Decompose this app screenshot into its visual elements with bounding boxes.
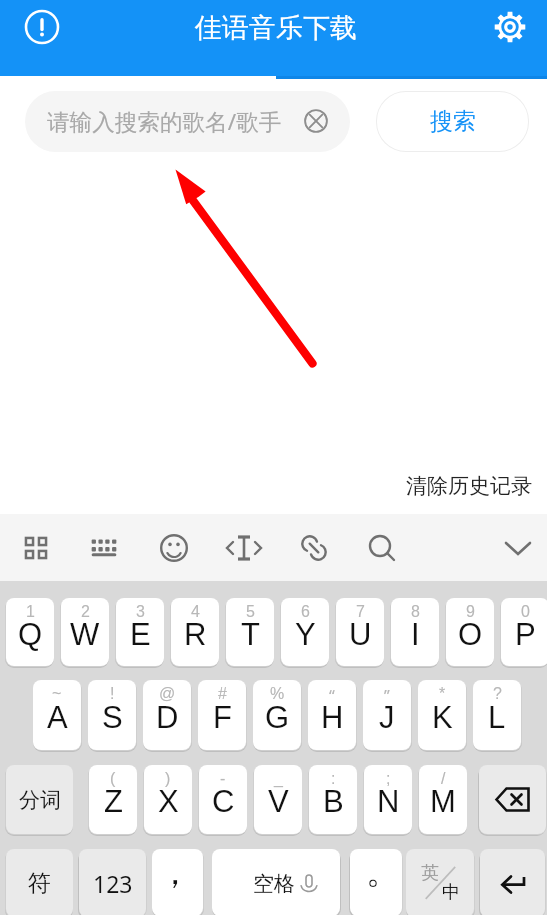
staticText: 符 (28, 869, 51, 898)
staticText: 8 (411, 603, 420, 621)
staticText: 空格 (253, 871, 295, 897)
button[interactable]: ， (152, 849, 203, 915)
staticText: I (411, 617, 420, 652)
staticText: 搜索 (430, 107, 476, 136)
button[interactable]: ; (364, 765, 412, 834)
button[interactable]: # (198, 680, 246, 750)
button[interactable]: 3 (116, 598, 164, 666)
button[interactable]: ~ (33, 680, 81, 750)
button[interactable]: 1 (6, 598, 54, 666)
button[interactable]: Clipboard (294, 528, 334, 568)
staticText: * (439, 685, 446, 703)
button[interactable]: 英 (406, 849, 474, 915)
staticText: ; (386, 770, 391, 788)
button[interactable]: 2 (61, 598, 109, 666)
staticText: R (184, 617, 207, 652)
button[interactable]: 0 (501, 598, 547, 666)
staticText: / (441, 770, 446, 788)
staticText: N (377, 784, 400, 819)
button[interactable]: Settings (490, 7, 530, 47)
staticText: # (218, 685, 227, 703)
staticText: T (241, 617, 260, 652)
button[interactable]: 123 (79, 849, 146, 915)
staticText: 9 (466, 603, 475, 621)
staticText: : (331, 770, 336, 788)
button[interactable]: % (253, 680, 301, 750)
staticText: J (379, 700, 395, 735)
staticText: 3 (136, 603, 145, 621)
staticText: U (349, 617, 372, 652)
button[interactable]: * (418, 680, 466, 750)
button[interactable]: ? (473, 680, 521, 750)
staticText: 6 (301, 603, 310, 621)
staticText: H (321, 700, 344, 735)
staticText: ? (493, 685, 502, 703)
button[interactable]: Hide keyboard (498, 528, 538, 568)
button[interactable]: Move cursor (224, 528, 264, 568)
button[interactable]: 6 (281, 598, 329, 666)
button[interactable]: 5 (226, 598, 274, 666)
staticText: F (213, 700, 232, 735)
button[interactable]: 。 (350, 849, 402, 915)
staticText: D (156, 700, 179, 735)
button[interactable]: Keyboard (84, 528, 124, 568)
button[interactable]: _ (254, 765, 302, 834)
staticText: ” (384, 685, 390, 707)
staticText: O (458, 617, 483, 652)
staticText: ) (165, 770, 171, 788)
button[interactable]: 请输入搜索的歌名/歌手 (25, 91, 350, 152)
button[interactable]: : (309, 765, 357, 834)
staticText: _ (274, 770, 283, 788)
staticText: Y (295, 617, 316, 652)
button[interactable]: “ (308, 680, 356, 750)
staticText: @ (159, 685, 176, 703)
staticText: S (102, 700, 123, 735)
button[interactable]: ( (89, 765, 137, 834)
button[interactable]: 符 (6, 849, 73, 915)
staticText: 7 (356, 603, 365, 621)
staticText: 分词 (19, 787, 61, 813)
staticText: - (220, 770, 226, 788)
button[interactable]: Info (22, 7, 62, 47)
staticText: 中 (442, 881, 460, 904)
button[interactable]: ” (363, 680, 411, 750)
button[interactable]: - (199, 765, 247, 834)
button[interactable]: Search (362, 528, 402, 568)
staticText: Z (104, 784, 123, 819)
staticText: M (430, 784, 456, 819)
button[interactable]: 清除历史记录 (404, 471, 534, 501)
button[interactable]: 4 (171, 598, 219, 666)
button[interactable]: 9 (446, 598, 494, 666)
staticText: K (432, 700, 453, 735)
staticText: 5 (246, 603, 255, 621)
button[interactable]: ! (88, 680, 136, 750)
staticText: B (323, 784, 344, 819)
staticText: W (70, 617, 100, 652)
button[interactable]: 分词 (6, 765, 73, 834)
staticText: 佳语音乐下载 (195, 11, 357, 45)
staticText: 4 (191, 603, 200, 621)
button[interactable] (479, 765, 546, 834)
staticText: 2 (81, 603, 90, 621)
button[interactable]: / (419, 765, 467, 834)
staticText: G (265, 700, 290, 735)
button[interactable]: Keyboard layouts (16, 528, 56, 568)
staticText: 0 (521, 603, 530, 621)
button[interactable]: Emoji (154, 528, 194, 568)
staticText: P (515, 617, 536, 652)
button[interactable]: 7 (336, 598, 384, 666)
staticText: V (268, 784, 289, 819)
staticText: X (158, 784, 179, 819)
staticText: “ (329, 685, 335, 707)
button[interactable]: @ (143, 680, 191, 750)
button[interactable]: 空格 (212, 849, 340, 915)
button[interactable]: ) (144, 765, 192, 834)
button[interactable]: 搜索 (376, 91, 529, 152)
staticText: ! (110, 685, 115, 703)
staticText: % (270, 685, 285, 703)
staticText: ~ (52, 685, 62, 703)
button[interactable] (480, 849, 545, 915)
staticText: E (130, 617, 151, 652)
staticText: 请输入搜索的歌名/歌手 (47, 106, 282, 137)
button[interactable]: 8 (391, 598, 439, 666)
